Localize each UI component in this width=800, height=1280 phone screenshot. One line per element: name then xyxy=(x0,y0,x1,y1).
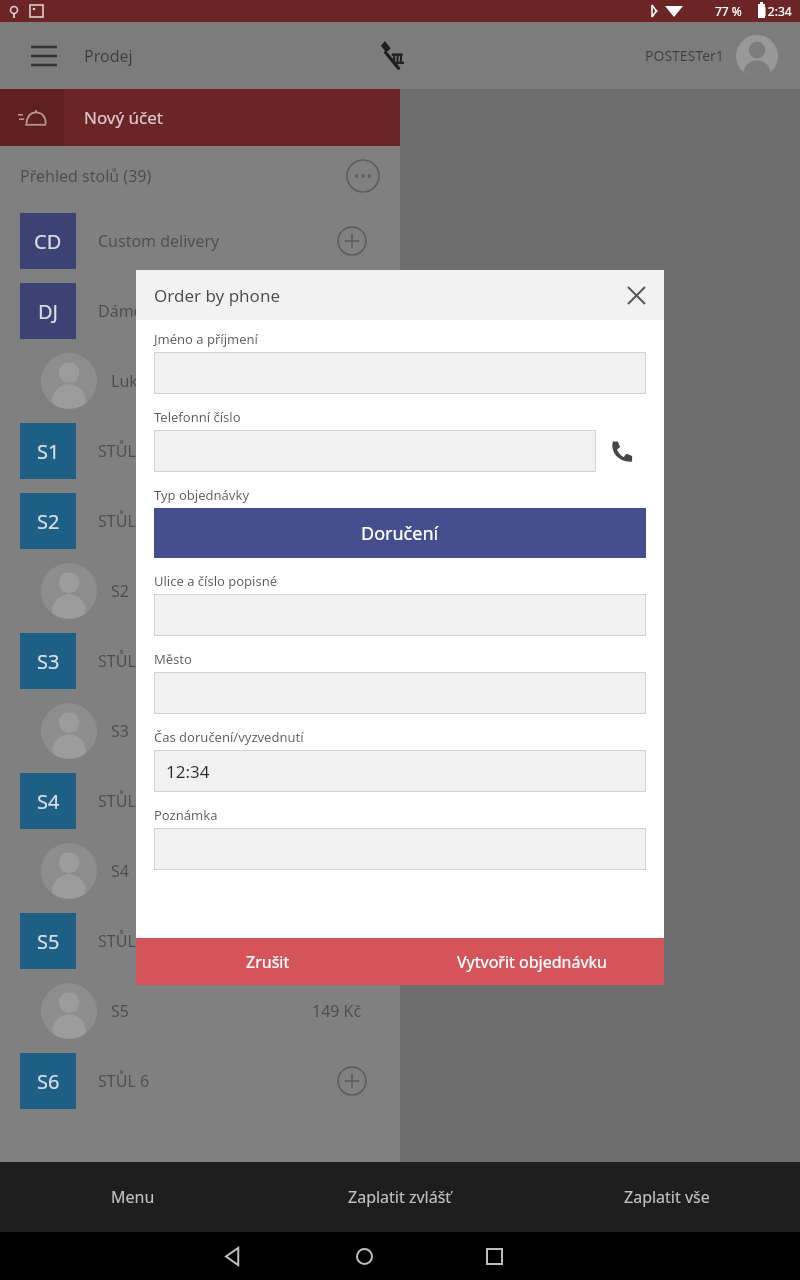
button[interactable]: Home xyxy=(340,1232,388,1280)
button[interactable]: Account xyxy=(736,35,778,77)
button[interactable]: More options xyxy=(346,159,380,193)
staticText: STŮL 4 xyxy=(98,790,150,812)
button[interactable] xyxy=(154,828,646,870)
staticText: DJ xyxy=(38,298,59,325)
staticText: S4 xyxy=(37,788,60,815)
staticText: S3 xyxy=(111,720,129,742)
button[interactable]: Doručení xyxy=(154,508,646,558)
staticText: Doručení xyxy=(361,521,439,546)
staticText: POSTESTer1 xyxy=(645,46,724,65)
staticText: S2 xyxy=(37,508,60,535)
button[interactable]: S6 xyxy=(0,1046,400,1116)
staticText: STŮL 1 xyxy=(98,440,150,462)
staticText: Custom delivery xyxy=(98,230,220,252)
button[interactable]: Add STŮL 4 xyxy=(335,784,369,818)
staticText: Nový účet xyxy=(84,106,163,129)
staticText: S1 xyxy=(37,438,60,465)
button[interactable] xyxy=(154,594,646,636)
staticText: Přehled stolů (39) xyxy=(20,165,152,187)
staticText: Vytvořit objednávku xyxy=(457,951,607,973)
button[interactable]: S2 xyxy=(0,486,400,556)
button[interactable]: Nový účet xyxy=(0,89,400,146)
button[interactable]: Lukáš xyxy=(0,346,400,416)
button[interactable]: Add STŮL 6 xyxy=(335,1064,369,1098)
staticText: Zaplatit vše xyxy=(624,1186,710,1208)
staticText: CD xyxy=(34,228,62,255)
staticText: STŮL 3 xyxy=(98,650,150,672)
button[interactable]: Add STŮL 2 xyxy=(335,504,369,538)
staticText: Čas doručení/vyzvednutí xyxy=(154,728,304,746)
button[interactable]: DJ xyxy=(0,276,400,346)
button[interactable]: Add STŮL 5 xyxy=(335,924,369,958)
staticText: S5 xyxy=(37,928,60,955)
button[interactable]: Back xyxy=(210,1232,258,1280)
button[interactable]: Add Dáme jídlo xyxy=(335,294,369,328)
button[interactable]: Menu xyxy=(0,1162,266,1232)
staticText: 12:34 xyxy=(761,3,792,19)
button[interactable]: S4 xyxy=(0,766,400,836)
button[interactable]: Zaplatit vše xyxy=(533,1162,800,1232)
staticText: STŮL 6 xyxy=(98,1070,150,1092)
button[interactable]: S4 xyxy=(0,836,400,906)
button[interactable]: Add Custom delivery xyxy=(335,224,369,258)
button[interactable]: Zaplatit zvlášť xyxy=(266,1162,533,1232)
button[interactable]: S3 xyxy=(0,626,400,696)
staticText: Menu xyxy=(111,1186,155,1208)
button[interactable]: Zrušit xyxy=(136,938,400,985)
button[interactable]: S3 xyxy=(0,696,400,766)
button[interactable]: Menu xyxy=(22,34,66,78)
staticText: S3 xyxy=(37,648,60,675)
staticText: S6 xyxy=(37,1068,60,1095)
staticText: STŮL 5 xyxy=(98,930,150,952)
button[interactable] xyxy=(154,672,646,714)
staticText: Ulice a číslo popisné xyxy=(154,572,278,590)
staticText: Zrušit xyxy=(246,951,290,973)
staticText: Poznámka xyxy=(154,806,218,824)
button[interactable]: S2 xyxy=(0,556,400,626)
button[interactable] xyxy=(154,430,596,472)
staticText: 77 % xyxy=(715,3,742,19)
button[interactable]: CD xyxy=(0,206,400,276)
staticText: Město xyxy=(154,650,192,668)
staticText: Dáme jídlo xyxy=(98,300,179,322)
button[interactable]: Close xyxy=(614,273,658,317)
staticText: Typ objednávky xyxy=(154,486,250,504)
staticText: Prodej xyxy=(84,45,133,67)
staticText: Order by phone xyxy=(154,284,280,307)
button[interactable]: S1 xyxy=(0,416,400,486)
staticText: 12:34 xyxy=(166,760,210,783)
staticText: 149 Kč xyxy=(312,1000,362,1022)
staticText: Jméno a příjmení xyxy=(154,330,258,348)
button[interactable]: Vytvořit objednávku xyxy=(400,938,664,985)
staticText: STŮL 2 xyxy=(98,510,150,532)
button[interactable]: Add STŮL 3 xyxy=(335,644,369,678)
button[interactable]: S5 xyxy=(0,976,400,1046)
button[interactable]: Call xyxy=(596,430,646,472)
button[interactable]: Logo xyxy=(365,32,413,80)
button[interactable]: S5 xyxy=(0,906,400,976)
staticText: S4 xyxy=(111,860,129,882)
button[interactable]: Recent apps xyxy=(470,1232,518,1280)
staticText: Telefonní číslo xyxy=(154,408,241,426)
staticText: S2 xyxy=(111,580,129,602)
button[interactable]: 12:34 xyxy=(154,750,646,792)
button[interactable] xyxy=(154,352,646,394)
staticText: S5 xyxy=(111,1000,129,1022)
staticText: Lukáš xyxy=(111,370,155,392)
staticText: Zaplatit zvlášť xyxy=(348,1186,452,1208)
